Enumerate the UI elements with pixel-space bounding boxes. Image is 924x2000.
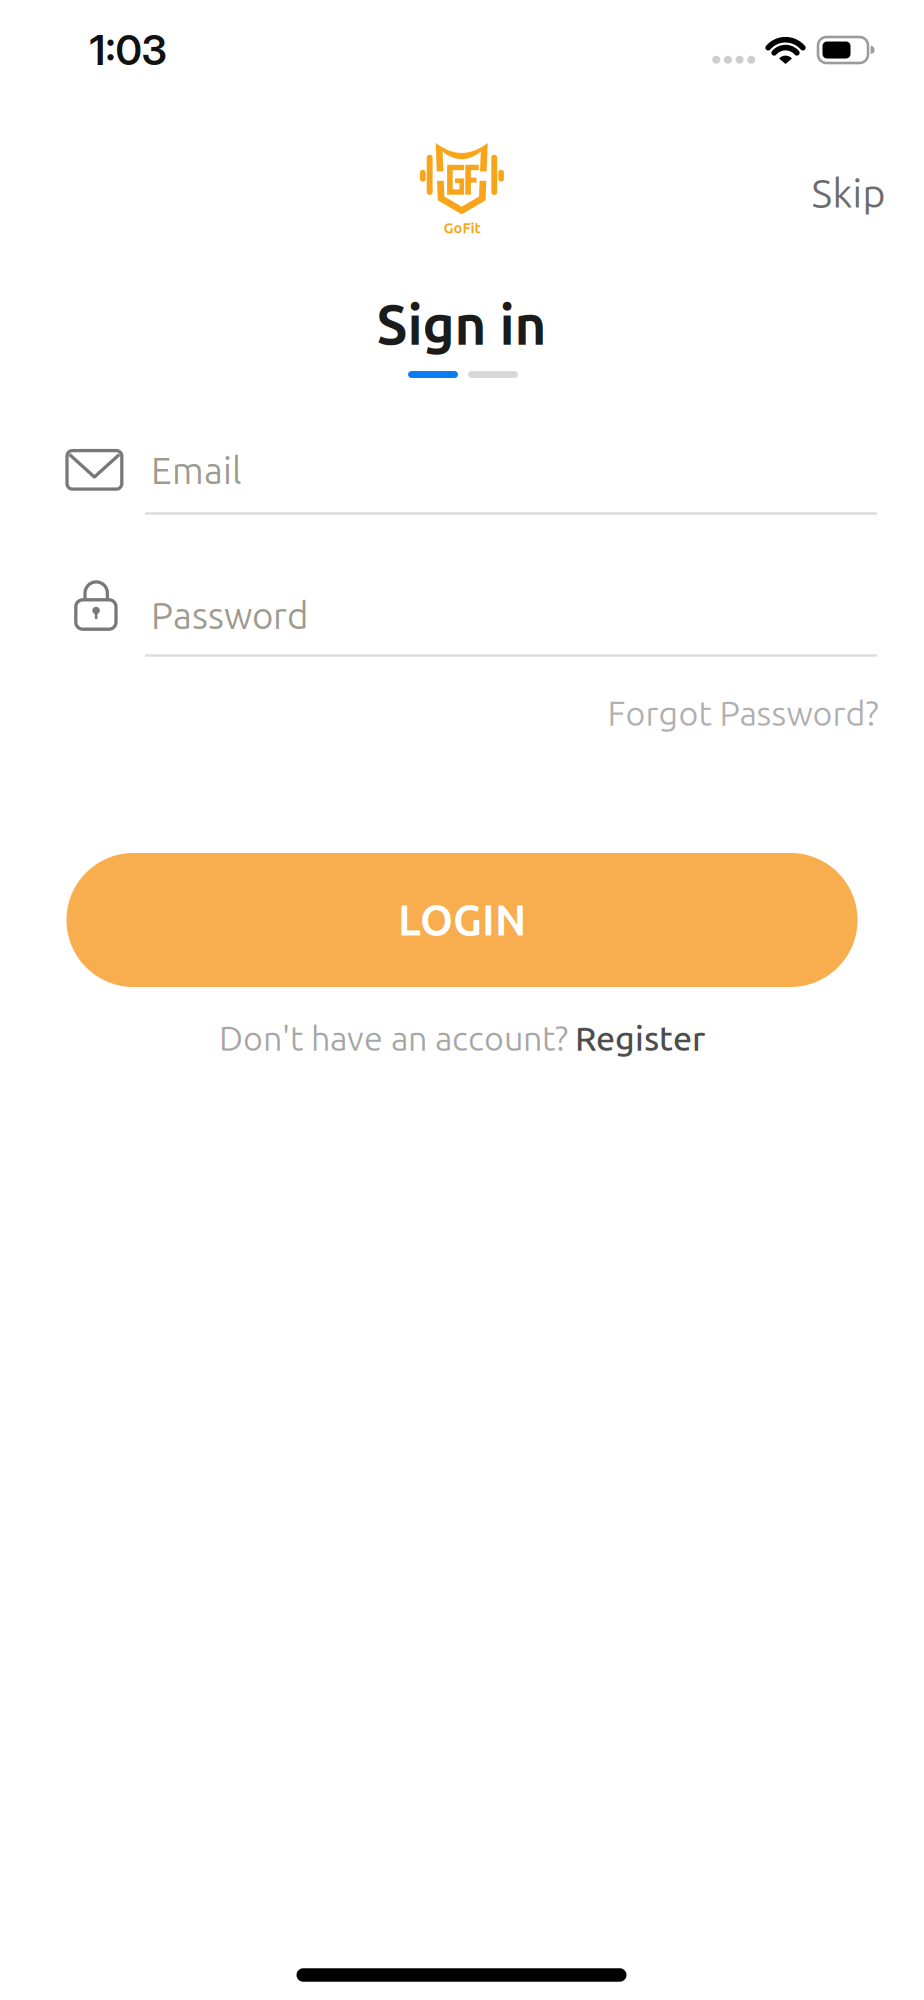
staticText: Sign in (376, 294, 546, 355)
button[interactable]: Skip (811, 171, 885, 215)
staticText: Forgot Password? (607, 694, 878, 732)
staticText: LOGIN (398, 896, 526, 944)
secureTextField[interactable]: Password (151, 595, 877, 636)
staticText: 1:03 (89, 25, 166, 75)
staticText: GoFit (443, 220, 480, 236)
staticText: Register (575, 1019, 705, 1057)
staticText: Password (151, 595, 308, 636)
staticText: Skip (811, 171, 885, 215)
textField[interactable]: Email (151, 450, 877, 491)
staticText: Don't have an account? (219, 1019, 568, 1057)
staticText: Email (151, 450, 242, 491)
button[interactable]: LOGIN (66, 853, 857, 987)
button[interactable]: Register (575, 1019, 705, 1057)
button[interactable]: Forgot Password? (607, 694, 878, 732)
